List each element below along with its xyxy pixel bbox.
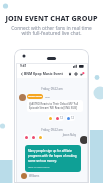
staticText: 9:41 bbox=[20, 64, 27, 68]
button[interactable]: Notifications bbox=[79, 71, 85, 77]
staticText: Many people sign up for affiliate progra… bbox=[28, 149, 78, 163]
staticText: Click to read more bbox=[28, 165, 50, 168]
button[interactable]: Settings bbox=[73, 71, 79, 77]
button[interactable]: Reaction bbox=[55, 115, 64, 121]
button[interactable]: Back bbox=[19, 71, 24, 76]
button[interactable]: Reaction bbox=[31, 134, 36, 140]
staticText: Jason Ruby bbox=[14, 133, 76, 137]
button[interactable]: Delete bbox=[67, 71, 73, 77]
button[interactable]: Reaction bbox=[38, 134, 43, 140]
button[interactable]: Reaction bbox=[48, 115, 53, 121]
staticText: 3pm bbox=[45, 95, 51, 98]
staticText: Friday, 09:22 am bbox=[16, 128, 88, 132]
button[interactable]: Many people sign up for affiliate progra… bbox=[25, 145, 81, 172]
staticText: 12 bbox=[60, 116, 63, 120]
staticText: Williams bbox=[29, 174, 40, 178]
staticText: @ASTRO Reacts to Their Debut MV 'Full Ep… bbox=[29, 102, 81, 110]
staticText: Friday, 09:22 am bbox=[16, 87, 88, 91]
staticText: Connect with other fans in real time wit… bbox=[0, 25, 103, 37]
button[interactable]: Reaction bbox=[66, 115, 75, 121]
staticText: Admin Kpop bbox=[28, 95, 42, 98]
staticText: BNM Kpop Music Event bbox=[24, 71, 63, 76]
staticText: JOIN EVENT CHAT GROUP bbox=[0, 13, 103, 23]
button[interactable]: Reaction bbox=[24, 134, 29, 140]
staticText: 12 bbox=[71, 116, 74, 120]
